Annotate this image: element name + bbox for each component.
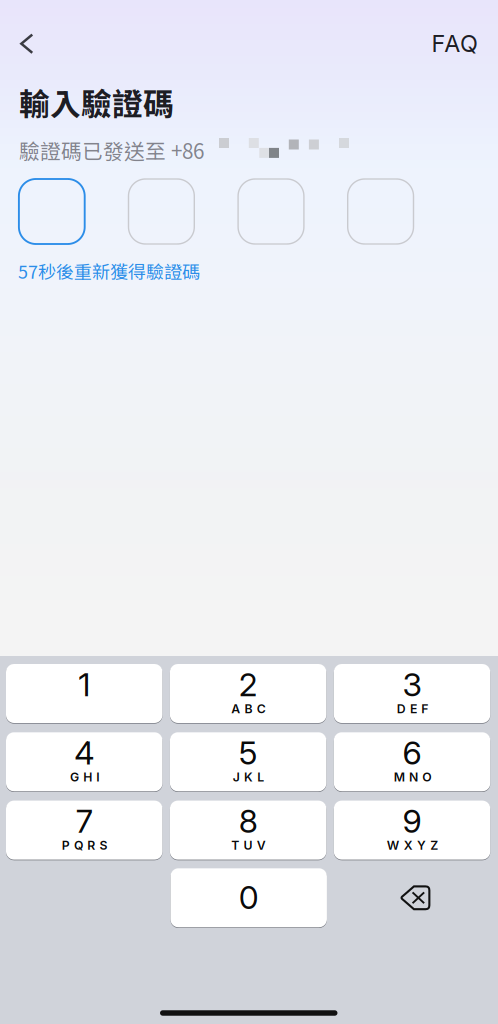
staticText: 輸入驗證碼 [19, 80, 174, 124]
button[interactable]: 7 [6, 801, 162, 860]
staticText: A B C [231, 701, 266, 716]
staticText: 3 [403, 665, 422, 704]
staticText: 4 [74, 733, 94, 772]
staticText: 8 [239, 802, 258, 840]
staticText: 2 [239, 665, 258, 704]
staticText: J K L [233, 770, 264, 784]
button[interactable]: 3 [334, 664, 490, 723]
button[interactable]: 2 [170, 664, 326, 723]
staticText: D E F [397, 701, 428, 716]
staticText: 9 [403, 802, 422, 840]
button[interactable]: 4 [6, 732, 162, 791]
staticText: 0 [239, 878, 259, 917]
button[interactable]: 8 [170, 801, 326, 860]
staticText: G H I [70, 770, 99, 784]
staticText: 6 [403, 733, 422, 772]
button[interactable]: Delete [337, 868, 494, 927]
staticText: 驗證碼已發送至 +86 [19, 135, 204, 165]
button[interactable]: 57秒後重新獲得驗證碼 [18, 258, 238, 284]
staticText: W X Y Z [387, 838, 438, 853]
button[interactable]: 6 [334, 732, 490, 791]
staticText: M N O [394, 770, 431, 784]
staticText: 57秒後重新獲得驗證碼 [18, 258, 200, 284]
button[interactable]: 9 [334, 801, 490, 860]
staticText: FAQ [431, 29, 478, 58]
staticText: 1 [78, 665, 90, 704]
button[interactable]: Back [4, 21, 50, 67]
button[interactable]: 0 [170, 868, 327, 927]
button[interactable]: 1 [6, 664, 162, 723]
staticText: T U V [231, 838, 266, 853]
staticText: 7 [76, 802, 93, 840]
button[interactable]: 5 [170, 732, 326, 791]
button[interactable]: FAQ [418, 20, 492, 66]
staticText: 5 [239, 733, 258, 772]
staticText: P Q R S [62, 838, 107, 853]
